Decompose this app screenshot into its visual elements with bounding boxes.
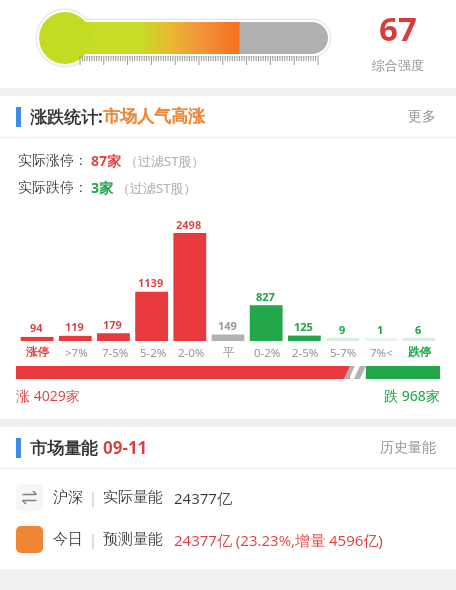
staticText: 6 — [415, 322, 422, 337]
staticText: 实际跌停： — [18, 179, 88, 197]
staticText: | — [89, 530, 97, 549]
button[interactable]: 5-2% — [134, 345, 172, 361]
button[interactable]: 历史量能 — [376, 435, 440, 461]
staticText: 跌 968家 — [384, 386, 440, 405]
staticText: 94 — [30, 320, 43, 335]
staticText: 涨跌统计: — [30, 105, 103, 128]
staticText: 67 — [379, 6, 417, 51]
staticText: （过滤ST股） — [125, 152, 205, 170]
staticText: 市场人气高涨 — [103, 106, 205, 127]
staticText: 24377亿 (23.23%,增量 4596亿) — [174, 530, 383, 550]
button[interactable]: 切换市场 — [16, 484, 440, 511]
staticText: 平 — [223, 345, 235, 359]
staticText: 24377亿 — [174, 488, 232, 508]
staticText: 5-7% — [330, 345, 357, 361]
staticText: 历史量能 — [380, 439, 436, 457]
staticText: 179 — [103, 317, 122, 332]
staticText: 7-5% — [102, 345, 129, 361]
button[interactable]: >7% — [57, 345, 96, 361]
staticText: 沪深 — [53, 488, 83, 507]
staticText: 3家 — [91, 178, 114, 197]
staticText: 125 — [294, 319, 313, 334]
staticText: >7% — [65, 345, 88, 361]
staticText: 今日 — [53, 530, 83, 549]
staticText: 7%< — [370, 345, 393, 361]
staticText: 涨 4029家 — [16, 386, 80, 405]
button[interactable]: 跌停 — [400, 345, 438, 359]
staticText: 实际涨停： — [18, 152, 88, 170]
button[interactable]: 平 — [210, 345, 248, 359]
staticText: 119 — [65, 319, 84, 334]
staticText: 2-5% — [292, 345, 319, 361]
staticText: 149 — [218, 318, 237, 333]
button[interactable]: 7-5% — [96, 345, 134, 361]
button[interactable]: 今日 — [16, 526, 440, 553]
button[interactable]: 涨停 — [18, 345, 57, 359]
staticText: 0-2% — [254, 345, 281, 361]
button[interactable]: 更多 — [404, 104, 440, 130]
staticText: 09-11 — [103, 436, 148, 459]
staticText: 更多 — [408, 108, 436, 126]
staticText: | — [89, 488, 97, 507]
staticText: 827 — [256, 289, 275, 304]
staticText: 1139 — [138, 275, 164, 290]
staticText: 9 — [339, 322, 346, 337]
staticText: 87家 — [91, 151, 122, 170]
button[interactable]: 2-5% — [286, 345, 324, 361]
staticText: 涨停 — [26, 345, 49, 359]
staticText: （过滤ST股） — [117, 179, 197, 197]
button[interactable]: 0-2% — [248, 345, 286, 361]
staticText: 跌停 — [408, 345, 431, 359]
staticText: 综合强度 — [372, 57, 424, 73]
staticText: 2498 — [176, 217, 202, 232]
staticText: 市场量能 — [30, 436, 103, 459]
button[interactable]: 7%< — [362, 345, 400, 361]
staticText: 预测量能 — [103, 530, 163, 549]
staticText: 5-2% — [140, 345, 167, 361]
staticText: 实际量能 — [103, 488, 163, 507]
other: 切换市场 — [16, 484, 43, 511]
button[interactable]: 2-0% — [172, 345, 210, 361]
staticText: 2-0% — [178, 345, 205, 361]
staticText: 1 — [377, 322, 384, 337]
button[interactable]: 5-7% — [324, 345, 362, 361]
